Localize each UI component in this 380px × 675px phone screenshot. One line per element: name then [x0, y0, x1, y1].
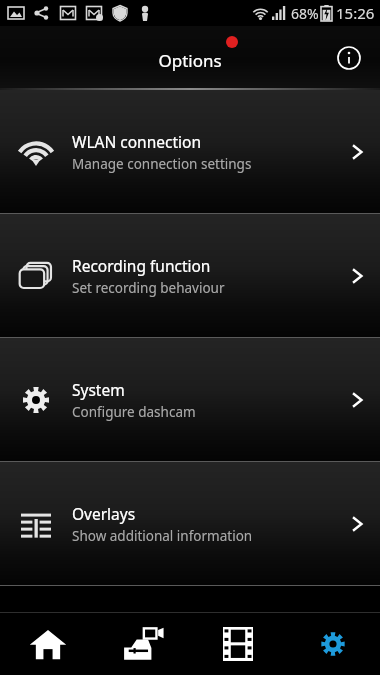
button[interactable]: Overlays [0, 462, 380, 585]
staticText: WLAN connection [72, 131, 201, 152]
staticText: Show additional information [72, 527, 253, 545]
staticText: System [72, 379, 125, 400]
staticText: Options [158, 49, 222, 72]
staticText: Configure dashcam [72, 403, 196, 421]
button[interactable]: Info [332, 41, 366, 75]
button[interactable]: Home [0, 612, 95, 675]
staticText: Set recording behaviour [72, 279, 225, 297]
button[interactable]: Settings [285, 612, 380, 675]
staticText: Overlays [72, 503, 136, 524]
button[interactable]: System [0, 338, 380, 461]
staticText: Recording function [72, 255, 211, 276]
staticText: 15:26 [336, 3, 375, 23]
button[interactable]: Recording function [0, 214, 380, 337]
button[interactable]: Recordings [190, 612, 285, 675]
button[interactable]: Dashcam [95, 612, 190, 675]
button[interactable]: WLAN connection [0, 90, 380, 213]
staticText: Manage connection settings [72, 155, 252, 173]
staticText: 68% [291, 4, 319, 23]
